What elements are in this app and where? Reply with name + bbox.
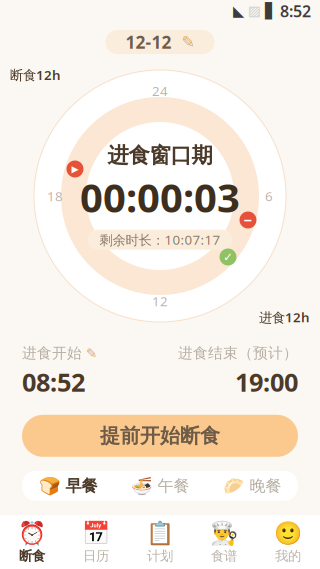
staticText: 18 — [47, 187, 63, 205]
staticText: 🍜 — [130, 476, 152, 496]
staticText: 晚餐 — [249, 476, 281, 496]
staticText: 🙂 — [274, 520, 302, 546]
button[interactable]: 🍜 — [114, 471, 206, 501]
staticText: ▶ — [71, 164, 78, 174]
button[interactable]: ⏰ — [0, 515, 64, 569]
staticText: − — [243, 210, 252, 230]
button[interactable]: 🍞 — [22, 471, 114, 501]
button[interactable]: 12-12 — [105, 30, 214, 54]
button[interactable]: 📋 — [128, 515, 192, 569]
staticText: ◣ — [233, 3, 244, 19]
staticText: ▨ — [248, 3, 261, 18]
button[interactable]: 进食完成 — [219, 248, 236, 265]
button[interactable]: 断食开始 — [66, 160, 83, 177]
staticText: 6 — [265, 187, 273, 205]
button[interactable]: 🥟 — [206, 471, 298, 501]
staticText: 断食12h — [10, 66, 61, 84]
staticText: 📅 — [82, 520, 110, 546]
staticText: 食谱 — [211, 548, 237, 564]
staticText: 进食开始 — [22, 344, 82, 362]
staticText: 8:52 — [280, 0, 311, 22]
button[interactable]: 👨‍🍳 — [192, 515, 256, 569]
button[interactable]: 📅 — [64, 515, 128, 569]
staticText: 断食 — [19, 548, 45, 564]
button[interactable]: 提前开始断食 — [22, 415, 298, 457]
staticText: 午餐 — [157, 476, 189, 496]
staticText: 剩余时长：10:07:17 — [99, 231, 220, 248]
staticText: 日历 — [83, 548, 109, 564]
staticText: 进食结束（预计） — [178, 344, 298, 362]
staticText: 00:00:03 — [80, 170, 240, 224]
staticText: 进食12h — [259, 308, 310, 326]
staticText: 08:52 — [22, 365, 85, 399]
staticText: 早餐 — [65, 476, 97, 496]
staticText: 👨‍🍳 — [210, 520, 238, 546]
staticText: 提前开始断食 — [100, 423, 220, 448]
staticText: 🥟 — [222, 476, 244, 496]
staticText: ✎ — [86, 346, 97, 361]
staticText: 🍞 — [38, 476, 60, 496]
staticText: ⏰ — [18, 520, 46, 546]
button[interactable]: 🙂 — [256, 515, 320, 569]
staticText: ▋ — [265, 3, 276, 19]
staticText: 19:00 — [235, 365, 298, 399]
staticText: ✓ — [223, 250, 233, 264]
staticText: 12-12 — [125, 30, 171, 53]
staticText: 12 — [152, 292, 168, 310]
staticText: 📋 — [146, 520, 174, 546]
staticText: 计划 — [147, 548, 173, 564]
button[interactable]: 减少时长 — [239, 210, 256, 230]
staticText: ✎ — [181, 33, 194, 51]
staticText: 进食窗口期 — [107, 142, 212, 168]
staticText: 24 — [152, 82, 168, 100]
staticText: 我的 — [275, 548, 301, 564]
